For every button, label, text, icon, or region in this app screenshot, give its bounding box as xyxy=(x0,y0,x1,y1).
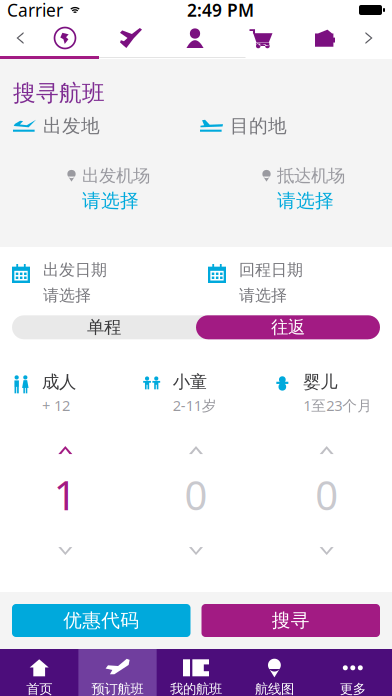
staticText: 优惠代码 xyxy=(63,609,139,632)
staticText: 航线图 xyxy=(255,681,294,696)
staticText: 0 xyxy=(315,468,338,521)
button[interactable]: 出发日期 xyxy=(0,259,196,305)
staticText: 往返 xyxy=(271,317,305,338)
button[interactable]: Decrease xyxy=(131,532,261,570)
staticText: Carrier xyxy=(7,0,63,21)
button[interactable]: 航线图 xyxy=(235,649,314,696)
button[interactable]: Increase xyxy=(261,432,392,468)
staticText: 1至23个月 xyxy=(303,396,372,415)
staticText: 我的航班 xyxy=(170,681,222,696)
button[interactable]: 抵达机场 xyxy=(196,165,392,212)
staticText: 搜寻 xyxy=(272,609,310,632)
button[interactable]: 搜寻 xyxy=(201,604,380,637)
button[interactable]: Increase xyxy=(0,432,131,468)
button[interactable]: Destinations xyxy=(40,20,90,56)
staticText: 预订航班 xyxy=(92,681,144,696)
staticText: 出发地 xyxy=(43,114,100,137)
staticText: 目的地 xyxy=(230,114,287,137)
staticText: 请选择 xyxy=(43,286,91,305)
button[interactable]: Decrease xyxy=(0,532,131,570)
staticText: 回程日期 xyxy=(239,260,303,280)
button[interactable]: Cart xyxy=(218,20,304,56)
button[interactable]: 预订航班 xyxy=(78,649,157,696)
staticText: 2:49 PM xyxy=(187,0,254,21)
button[interactable]: 优惠代码 xyxy=(12,604,190,637)
staticText: 出发机场 xyxy=(82,165,150,186)
button[interactable]: Book flights xyxy=(90,20,172,56)
button[interactable]: Back xyxy=(0,20,40,56)
button[interactable]: 更多 xyxy=(314,649,392,696)
button[interactable]: 回程日期 xyxy=(196,259,392,305)
staticText: 请选择 xyxy=(239,286,287,305)
staticText: 婴儿 xyxy=(303,371,337,393)
staticText: 请选择 xyxy=(82,189,139,212)
staticText: 成人 xyxy=(42,371,76,393)
button[interactable]: 单程 xyxy=(12,315,196,339)
staticText: 请选择 xyxy=(277,189,334,212)
staticText: 0 xyxy=(184,468,207,521)
button[interactable]: 出发机场 xyxy=(0,165,196,212)
staticText: 更多 xyxy=(340,681,366,696)
button[interactable]: Wallet xyxy=(304,20,346,56)
button[interactable]: Decrease xyxy=(261,532,392,570)
button[interactable]: 往返 xyxy=(196,315,380,339)
staticText: 抵达机场 xyxy=(277,165,345,186)
staticText: 小童 xyxy=(173,371,207,393)
button[interactable]: 我的航班 xyxy=(157,649,235,696)
staticText: 首页 xyxy=(26,681,52,696)
staticText: + 12 xyxy=(42,396,70,415)
button[interactable]: Forward xyxy=(346,20,392,56)
staticText: 搜寻航班 xyxy=(13,79,105,107)
button[interactable]: 首页 xyxy=(0,649,78,696)
button[interactable]: Increase xyxy=(131,432,261,468)
staticText: 2-11岁 xyxy=(173,396,217,415)
staticText: 出发日期 xyxy=(43,260,107,280)
button[interactable]: Profile xyxy=(172,20,218,56)
staticText: 单程 xyxy=(87,317,121,338)
staticText: 1 xyxy=(54,468,77,521)
